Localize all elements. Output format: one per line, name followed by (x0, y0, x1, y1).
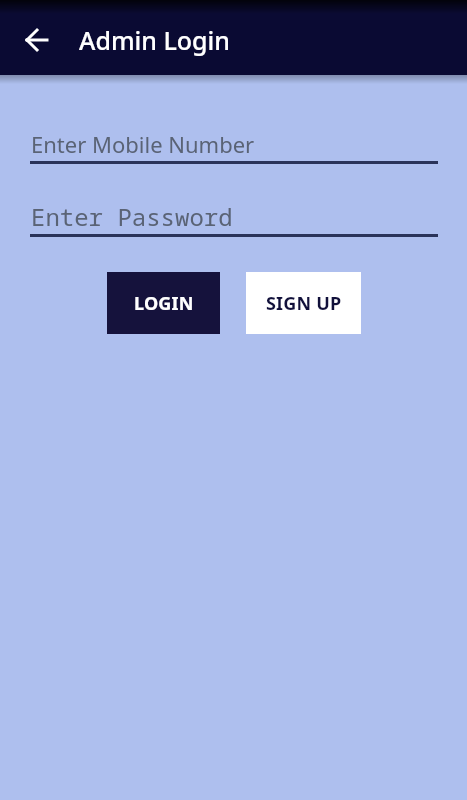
staticText: LOGIN (134, 291, 194, 316)
staticText: SIGN UP (266, 291, 342, 316)
button[interactable]: LOGIN (107, 272, 220, 334)
staticText: Enter Mobile Number (31, 129, 255, 159)
staticText: Admin Login (79, 23, 231, 57)
button[interactable] (20, 23, 54, 57)
button[interactable]: SIGN UP (246, 272, 361, 334)
staticText: Enter Password (31, 200, 233, 233)
